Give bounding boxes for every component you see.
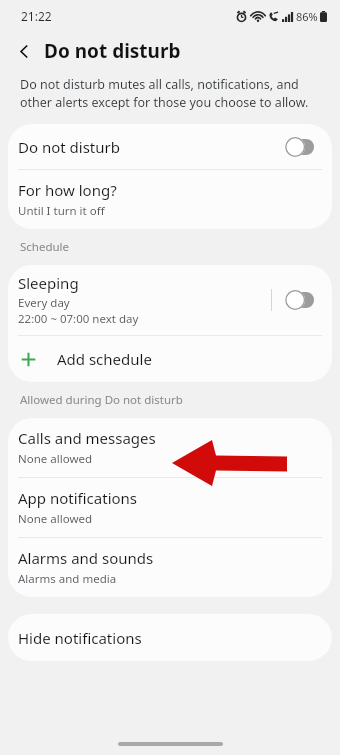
button[interactable]: Sleeping schedule toggle xyxy=(282,290,318,310)
staticText: Do not disturb xyxy=(44,38,181,64)
button[interactable]: App notifications xyxy=(8,478,332,537)
button[interactable]: Sleeping xyxy=(8,265,332,335)
staticText: None allowed xyxy=(18,511,92,527)
staticText: Add schedule xyxy=(57,349,152,369)
staticText: Calls and messages xyxy=(18,428,156,448)
staticText: Alarms and sounds xyxy=(18,548,154,568)
button[interactable]: For how long? xyxy=(8,170,332,229)
staticText: Schedule xyxy=(20,239,70,255)
staticText: Hide notifications xyxy=(18,628,142,648)
button[interactable]: Do not disturb xyxy=(8,124,332,169)
staticText: 86% xyxy=(296,9,318,24)
staticText: Allowed during Do not disturb xyxy=(20,392,183,408)
staticText: Every day xyxy=(18,295,70,311)
button[interactable]: Calls and messages xyxy=(8,418,332,477)
button[interactable]: Back xyxy=(9,36,39,66)
staticText: 22:00 ~ 07:00 next day xyxy=(18,311,139,327)
staticText: Until I turn it off xyxy=(18,203,105,219)
button[interactable]: Hide notifications xyxy=(8,614,332,661)
staticText: Do not disturb xyxy=(18,137,282,157)
staticText: Sleeping xyxy=(18,273,79,293)
staticText: Alarms and media xyxy=(18,571,117,587)
button[interactable]: Add schedule xyxy=(8,336,332,382)
staticText: 21:22 xyxy=(21,8,52,24)
staticText: App notifications xyxy=(18,488,138,508)
staticText: Do not disturb mutes all calls, notifica… xyxy=(20,76,320,111)
button[interactable]: Alarms and sounds xyxy=(8,538,332,597)
staticText: For how long? xyxy=(18,180,117,200)
staticText: None allowed xyxy=(18,451,92,467)
